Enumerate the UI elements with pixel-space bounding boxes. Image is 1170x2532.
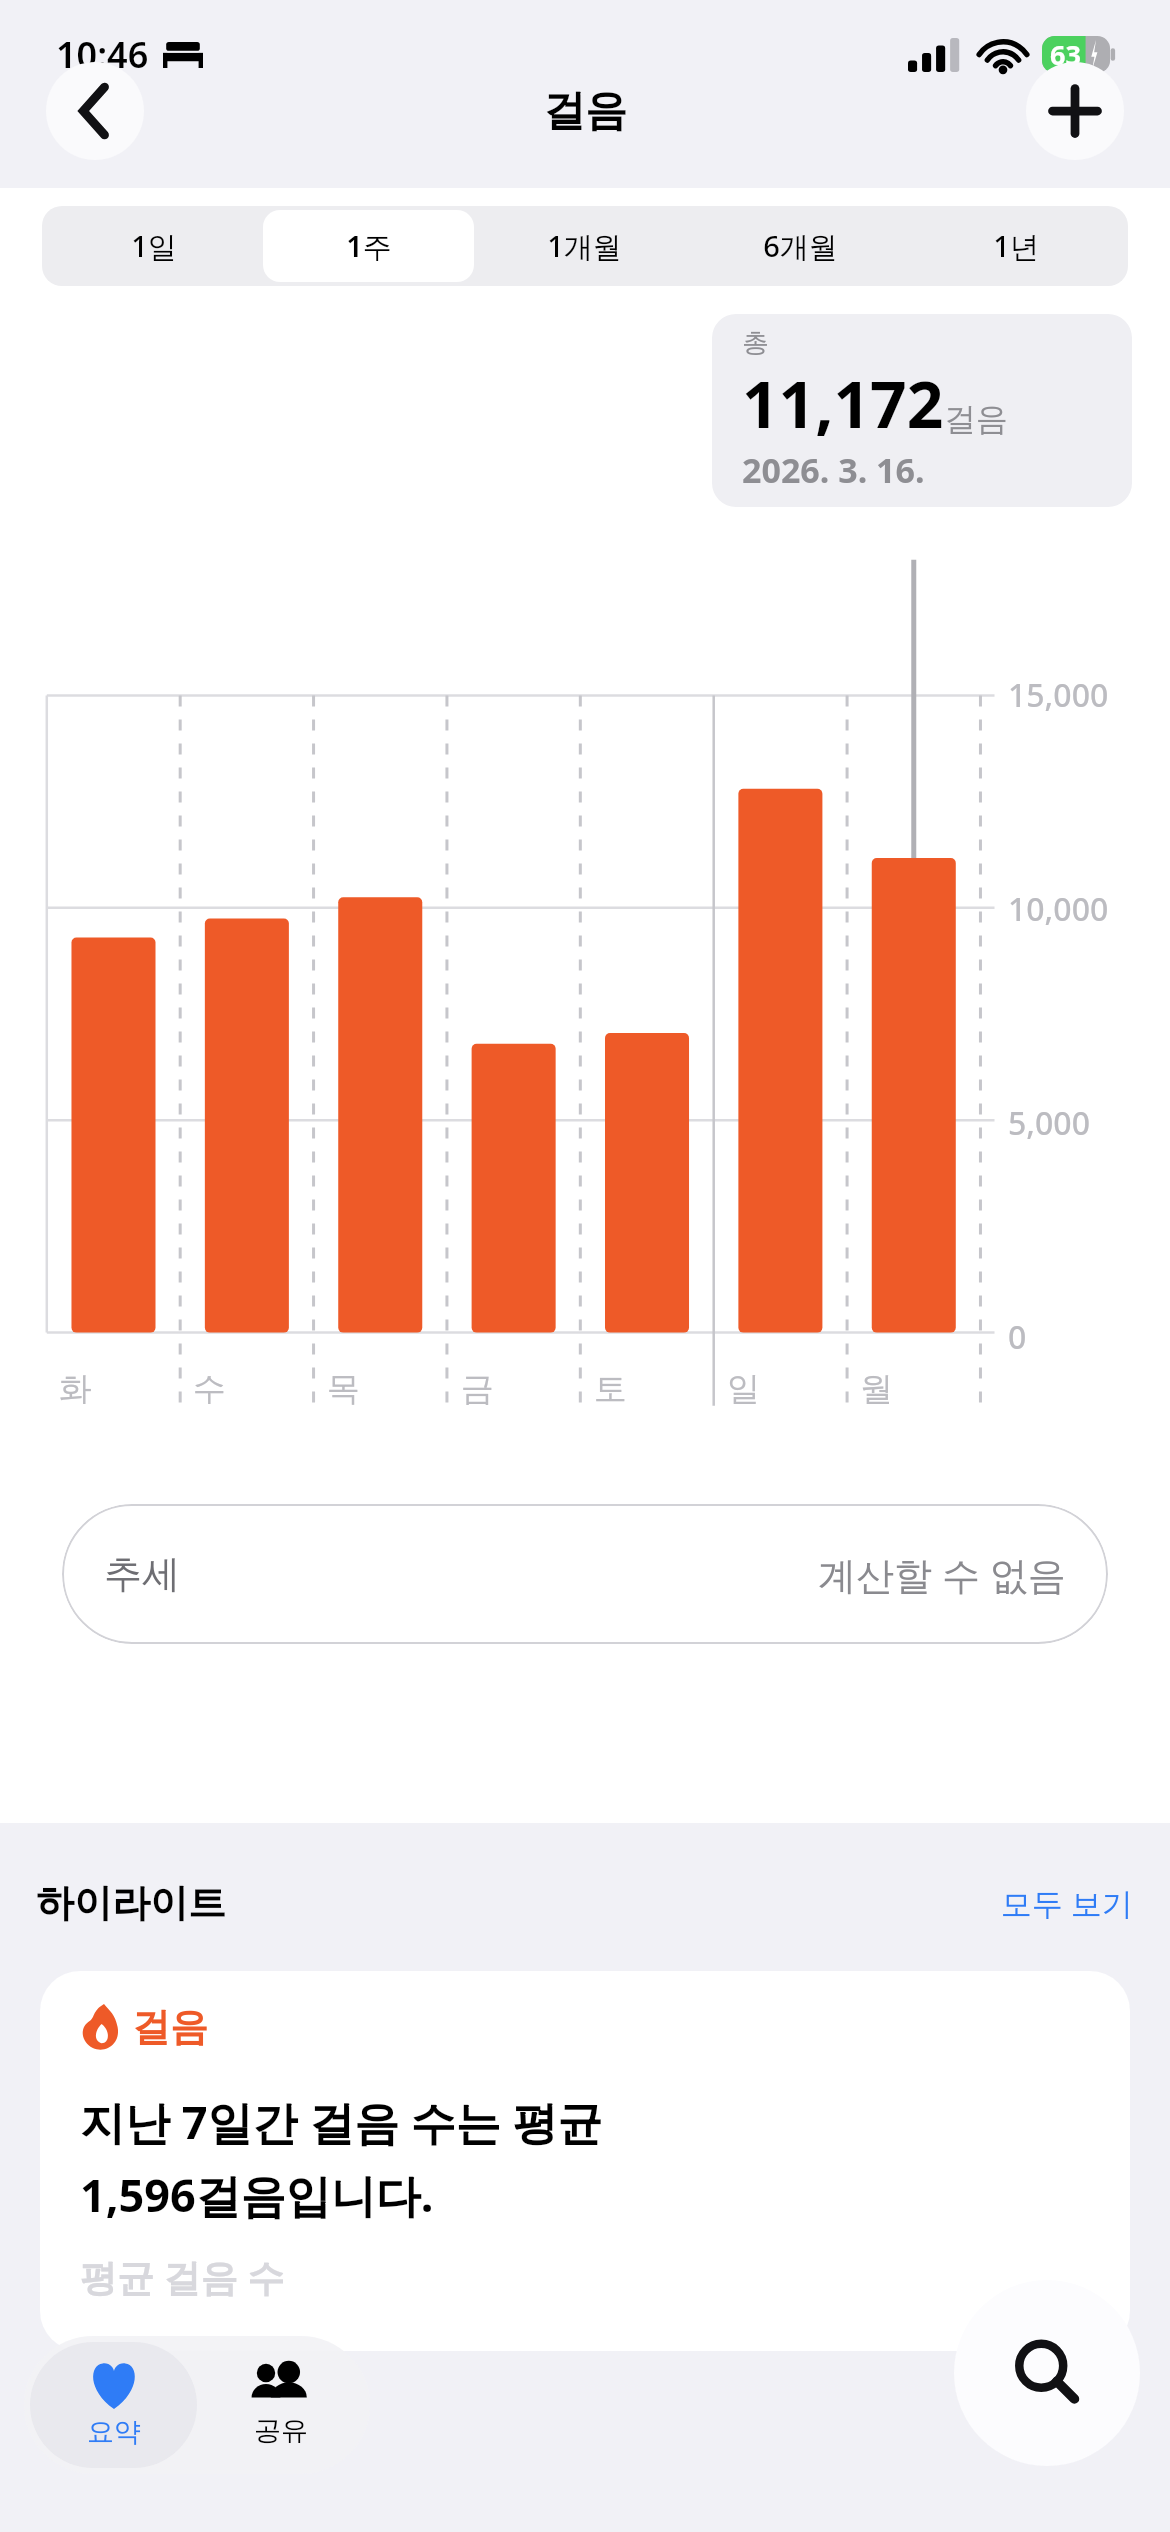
staticText: 총 (742, 326, 769, 360)
staticText: 1년 (993, 226, 1039, 266)
button[interactable]: 추세 (62, 1504, 1108, 1644)
staticText: 5,000 (1008, 1101, 1090, 1145)
staticText: 월 (860, 1368, 893, 1410)
button[interactable]: 걸음 (40, 1971, 1130, 2351)
staticText: 금 (461, 1368, 494, 1410)
button[interactable]: Search (954, 2280, 1140, 2466)
staticText: 지난 7일간 걸음 수는 평균 (80, 2091, 603, 2152)
staticText: 일 (727, 1368, 760, 1410)
staticText: 모두 보기 (1001, 1882, 1134, 1924)
staticText: 공유 (254, 2414, 308, 2448)
staticText: 6개월 (763, 226, 838, 266)
staticText: 15,000 (1008, 673, 1109, 717)
button[interactable]: 6개월 (694, 210, 906, 282)
staticText: 화 (59, 1368, 92, 1410)
staticText: 걸음 (944, 399, 1008, 439)
staticText: 토 (594, 1368, 627, 1410)
button[interactable]: 1개월 (478, 210, 690, 282)
staticText: 추세 (104, 1550, 180, 1598)
staticText: 2026. 3. 16. (742, 447, 925, 493)
button[interactable]: Back (46, 62, 144, 160)
button[interactable]: 1일 (48, 210, 259, 282)
staticText: 1,596걸음입니다. (80, 2164, 434, 2225)
staticText: 걸음 (132, 2003, 208, 2051)
staticText: 1개월 (547, 226, 622, 266)
staticText: 10:46 (56, 30, 149, 79)
staticText: 0 (1008, 1315, 1027, 1359)
button[interactable]: 모두 보기 (1001, 1882, 1134, 1924)
staticText: 10,000 (1008, 887, 1109, 931)
staticText: 하이라이트 (36, 1879, 226, 1927)
button[interactable]: 1주 (263, 210, 474, 282)
staticText: 수 (193, 1368, 226, 1410)
staticText: 평균 걸음 수 (80, 2251, 285, 2302)
staticText: 1일 (131, 226, 177, 266)
staticText: 요약 (87, 2415, 141, 2449)
staticText: 목 (327, 1368, 360, 1410)
button[interactable]: 공유 (197, 2342, 364, 2468)
staticText: 1주 (346, 226, 392, 266)
button[interactable]: Add data (1026, 62, 1124, 160)
staticText: 걸음 (543, 85, 627, 138)
staticText: 계산할 수 없음 (818, 1548, 1066, 1600)
button[interactable]: 요약 (30, 2342, 197, 2468)
staticText: 63 (1050, 36, 1081, 73)
staticText: 11,172 (742, 360, 944, 447)
button[interactable]: 1년 (910, 210, 1122, 282)
